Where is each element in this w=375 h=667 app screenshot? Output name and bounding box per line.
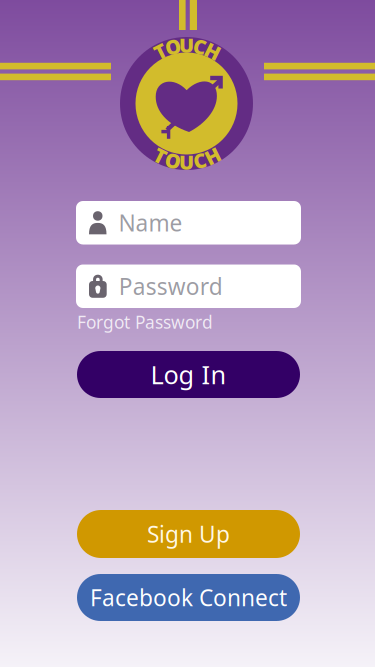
staticText: T bbox=[154, 143, 166, 169]
button[interactable]: Sign Up bbox=[77, 510, 300, 558]
staticText: Log In bbox=[150, 358, 226, 391]
staticText: C bbox=[193, 33, 206, 60]
staticText: U bbox=[179, 149, 194, 175]
staticText: U bbox=[179, 32, 194, 58]
button[interactable]: Log In bbox=[77, 351, 300, 398]
button[interactable]: Forgot Password bbox=[77, 312, 302, 332]
staticText: H bbox=[205, 143, 220, 169]
staticText: Forgot Password bbox=[77, 310, 213, 333]
staticText: O bbox=[165, 147, 181, 174]
staticText: O bbox=[165, 33, 181, 60]
staticText: Sign Up bbox=[147, 519, 230, 549]
staticText: Password bbox=[119, 271, 223, 301]
staticText: Name bbox=[118, 208, 182, 238]
staticText: C bbox=[193, 147, 206, 174]
button[interactable]: Facebook Connect bbox=[77, 574, 300, 621]
staticText: Facebook Connect bbox=[90, 582, 287, 612]
staticText: H bbox=[205, 38, 220, 64]
staticText: T bbox=[154, 38, 166, 64]
